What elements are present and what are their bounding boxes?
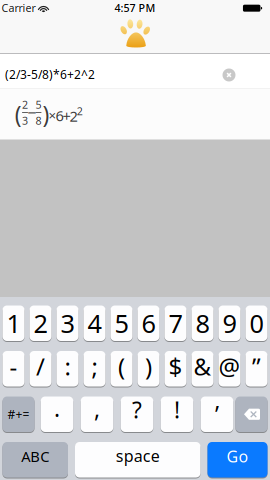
staticText: , (94, 394, 100, 424)
button[interactable]: space (75, 442, 200, 477)
button[interactable]: ABC (2, 442, 68, 477)
staticText: 5 (35, 97, 41, 112)
staticText: 2 (70, 106, 78, 126)
staticText: × (49, 106, 57, 124)
button[interactable]: / (29, 351, 51, 386)
button[interactable]: #+= (2, 396, 34, 432)
staticText: #+= (7, 406, 29, 422)
staticText: 6 (55, 106, 63, 125)
staticText: / (36, 350, 45, 382)
staticText: ) (145, 350, 152, 382)
staticText: ABC (21, 446, 49, 466)
staticText: ) (42, 99, 49, 129)
button[interactable]: 3 (56, 305, 78, 341)
staticText: − (27, 102, 36, 123)
staticText: 6 (141, 306, 155, 340)
button[interactable]: ! (161, 396, 193, 432)
staticText: 8 (195, 306, 209, 340)
button[interactable]: : (56, 351, 78, 386)
staticText: @ (218, 350, 240, 382)
staticText: 8 (35, 113, 41, 128)
button[interactable]: ) (137, 351, 159, 386)
staticText: 2 (33, 306, 47, 340)
staticText: 9 (222, 306, 236, 340)
staticText: . (54, 393, 60, 423)
button[interactable]: @ (218, 351, 240, 386)
button[interactable]: & (191, 351, 213, 386)
button[interactable]: 1 (2, 305, 24, 341)
button[interactable]: - (2, 351, 24, 386)
staticText: 3 (22, 113, 28, 128)
staticText: ’ (215, 399, 219, 429)
button[interactable]: 8 (191, 305, 213, 341)
staticText: (2/3-5/8)*6+2^2 (5, 66, 95, 82)
staticText: ( (118, 350, 125, 382)
staticText: ! (174, 395, 180, 425)
button[interactable]: 0 (245, 305, 267, 341)
button[interactable]: 6 (137, 305, 159, 341)
staticText: & (193, 350, 211, 382)
staticText: ” (252, 350, 261, 382)
staticText: 5 (114, 306, 128, 340)
staticText: - (9, 350, 17, 382)
button[interactable]: 7 (164, 305, 186, 341)
button[interactable]: Go (207, 442, 267, 477)
button[interactable]: 5 (110, 305, 132, 341)
staticText: + (62, 106, 70, 126)
button[interactable]: ? (121, 396, 153, 432)
staticText: 1 (6, 306, 20, 340)
button[interactable]: 4 (83, 305, 105, 341)
staticText: $ (168, 350, 182, 382)
staticText: Go (226, 446, 248, 467)
staticText: ; (91, 350, 97, 382)
staticText: ? (132, 395, 142, 425)
staticText: 2 (77, 104, 83, 118)
staticText: 4 (87, 306, 101, 340)
button[interactable]: , (81, 396, 113, 432)
staticText: 3 (60, 306, 74, 340)
button[interactable]: 9 (218, 305, 240, 341)
button[interactable]: $ (164, 351, 186, 386)
staticText: 4:57 PM (114, 1, 155, 15)
button[interactable]: ” (245, 351, 267, 386)
button[interactable]: . (41, 396, 73, 432)
staticText: 0 (249, 306, 263, 340)
button[interactable]: Clear text (222, 68, 235, 81)
button[interactable]: ; (83, 351, 105, 386)
staticText: 2 (22, 97, 28, 112)
staticText: 7 (168, 306, 182, 340)
staticText: space (116, 445, 160, 466)
staticText: : (64, 350, 70, 382)
button[interactable]: ( (110, 351, 132, 386)
button[interactable]: Delete (235, 396, 267, 432)
button[interactable]: 2 (29, 305, 51, 341)
staticText: Carrier (1, 1, 35, 15)
staticText: ( (15, 99, 22, 129)
button[interactable]: ’ (201, 396, 233, 432)
button[interactable]: (2/3-5/8)*6+2^2 (0, 54, 270, 88)
